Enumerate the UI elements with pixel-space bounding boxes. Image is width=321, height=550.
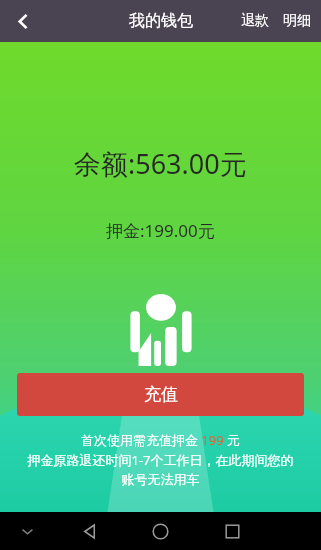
button[interactable]: 明细 xyxy=(276,1,318,41)
button[interactable]: 退款 xyxy=(234,1,276,41)
staticText: 我的钱包 xyxy=(129,11,193,31)
staticText: 退款 xyxy=(241,12,269,30)
button[interactable]: 充值 xyxy=(17,373,304,416)
button[interactable]: Hide keyboard xyxy=(0,512,55,550)
staticText: 充值 xyxy=(144,384,178,405)
button[interactable]: Back xyxy=(55,512,124,550)
button[interactable]: Home xyxy=(124,512,196,550)
button[interactable]: Back xyxy=(0,0,46,42)
staticText: 首次使用需充值押金 199 元 押金原路退还时间1-7个工作日，在此期间您的 账… xyxy=(4,431,317,488)
button[interactable]: Recents xyxy=(196,512,268,550)
staticText: 押金:199.00元 xyxy=(106,219,215,242)
staticText: 明细 xyxy=(283,12,311,30)
staticText: 余额:563.00元 xyxy=(74,145,247,182)
